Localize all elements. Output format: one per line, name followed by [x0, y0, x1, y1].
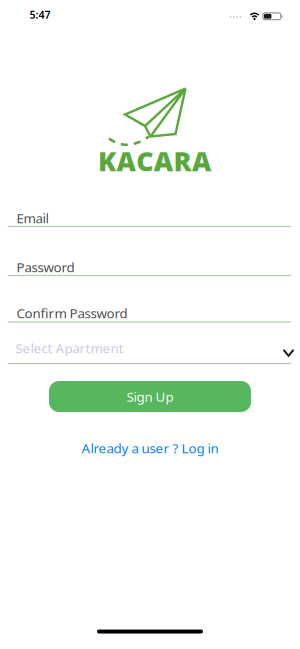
staticText: Already a user ? Log in [81, 439, 218, 457]
staticText: KACARA [98, 143, 211, 179]
staticText: Email [16, 209, 48, 227]
button[interactable]: Confirm Password [2, 301, 299, 325]
staticText: Confirm Password [16, 304, 127, 322]
staticText: Password [16, 258, 74, 276]
staticText: Sign Up [126, 388, 173, 405]
staticText: Select Apartment [15, 339, 123, 357]
button[interactable]: Email [2, 206, 299, 230]
button[interactable]: Password [2, 255, 299, 279]
staticText: 5:47 [29, 8, 50, 22]
button[interactable]: Sign Up [49, 381, 251, 412]
button[interactable]: Select Apartment [2, 335, 297, 361]
button[interactable]: Already a user ? Log in [81, 439, 218, 457]
